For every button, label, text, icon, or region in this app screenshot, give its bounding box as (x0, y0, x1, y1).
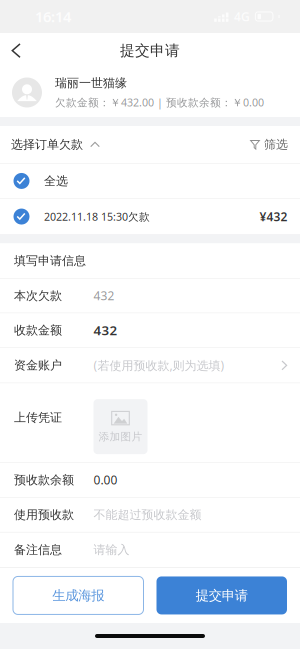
staticText: 瑞丽一世猫缘 (55, 75, 127, 90)
staticText: 使用预收款 (14, 507, 74, 522)
button[interactable]: 添加图片 (93, 399, 147, 454)
staticText: 预收款余额 (14, 473, 74, 487)
staticText: (若使用预收款,则为选填) (93, 357, 224, 373)
staticText: 填写申请信息 (14, 253, 86, 268)
staticText: 备注信息 (14, 542, 62, 557)
button[interactable]: 提交申请 (156, 576, 287, 614)
staticText: 16:14 (35, 7, 71, 26)
button[interactable]: 资金账户 (0, 348, 300, 383)
staticText: 添加图片 (98, 430, 142, 443)
staticText: 432 (93, 321, 117, 339)
staticText: 请输入 (93, 542, 129, 557)
button[interactable]: 返回 (0, 33, 32, 68)
button[interactable]: 全选 (0, 164, 300, 198)
staticText: 欠款金额：￥432.00 | 预收款余额：￥0.00 (55, 95, 264, 109)
staticText: 上传凭证 (14, 410, 62, 425)
staticText: 生成海报 (52, 587, 104, 604)
staticText: ¥432 (259, 209, 287, 224)
staticText: 提交申请 (120, 41, 180, 59)
staticText: 不能超过预收款金额 (93, 507, 201, 522)
staticText: 本次欠款 (14, 288, 62, 303)
staticText: 4G (234, 8, 250, 24)
staticText: 2022.11.18 15:30欠款 (44, 209, 150, 224)
staticText: 432 (93, 288, 114, 304)
button[interactable]: 生成海报 (13, 576, 143, 614)
staticText: 资金账户 (14, 358, 62, 372)
button[interactable]: 2022.11.18 15:30欠款 (0, 199, 300, 234)
staticText: 全选 (44, 174, 68, 188)
staticText: 0.00 (93, 472, 117, 488)
staticText: 筛选 (264, 137, 288, 152)
staticText: 提交申请 (196, 587, 248, 604)
button[interactable]: 筛选 (250, 129, 288, 160)
staticText: 选择订单欠款 (11, 137, 83, 152)
button[interactable]: 选择订单欠款 (11, 129, 100, 160)
staticText: 收款金额 (14, 323, 62, 337)
